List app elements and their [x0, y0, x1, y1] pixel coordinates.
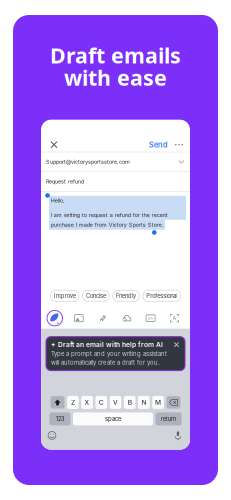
button[interactable]: Attach file	[95, 311, 110, 326]
staticText: Hey	[158, 339, 168, 346]
staticText: M	[155, 398, 161, 406]
staticText: Professional	[146, 292, 177, 299]
button[interactable]: V	[110, 396, 121, 409]
staticText: I am writing to request a refund for the…	[51, 212, 168, 218]
staticText: Hello,	[51, 197, 65, 204]
button[interactable]: Scan document	[167, 311, 182, 326]
staticText: Z	[71, 398, 75, 406]
staticText: space	[105, 415, 121, 422]
staticText: Concise	[86, 292, 106, 299]
button[interactable]: Improve	[50, 290, 79, 302]
button[interactable]: N	[138, 396, 150, 409]
button[interactable]: Emoji keyboard	[45, 429, 59, 441]
button[interactable]: Mail	[44, 336, 91, 348]
button[interactable]: Close	[47, 138, 61, 152]
button[interactable]: C	[95, 396, 107, 409]
staticText: GIF	[148, 316, 154, 320]
staticText: Type a prompt and your writing assistant	[51, 350, 167, 357]
staticText: will automatically create a draft for yo…	[51, 359, 160, 366]
button[interactable]: space	[73, 412, 153, 425]
staticText: with ease	[64, 63, 167, 92]
button[interactable]: Insert from Drive	[119, 311, 134, 326]
button[interactable]: Hey	[140, 336, 187, 348]
staticText: Support@victorysportsstore.com	[46, 159, 130, 165]
staticText: Mail	[63, 339, 73, 346]
button[interactable]: Shift	[50, 396, 64, 409]
staticText: Send	[149, 140, 168, 149]
button[interactable]: Insert photo	[71, 311, 86, 326]
button[interactable]: Send	[149, 138, 168, 152]
button[interactable]: X	[81, 396, 93, 409]
staticText: Improve	[54, 292, 76, 299]
staticText: 123	[56, 415, 64, 422]
staticText: Request refund	[46, 178, 84, 185]
button[interactable]: Z	[67, 396, 79, 409]
button[interactable]: More options	[173, 138, 185, 152]
button[interactable]: Writing tools	[47, 310, 62, 326]
staticText: Draft an email with help from AI	[58, 341, 163, 349]
staticText: purchase I made from Victory Sports Stor…	[51, 221, 164, 228]
staticText: C	[99, 398, 104, 406]
button[interactable]: Delete	[166, 396, 180, 409]
button[interactable]: 123	[49, 412, 70, 425]
staticText: X	[85, 398, 90, 406]
button[interactable]: M	[152, 396, 164, 409]
button[interactable]: Concise	[82, 290, 109, 302]
button[interactable]: Dismiss	[173, 341, 180, 348]
button[interactable]: return	[156, 412, 182, 425]
staticText: V	[113, 398, 118, 406]
staticText: N	[141, 398, 146, 406]
button[interactable]: Insert GIF	[143, 311, 158, 326]
button[interactable]: Dictate	[171, 429, 185, 441]
staticText: A	[172, 315, 176, 321]
staticText: I	[114, 339, 116, 346]
staticText: B	[128, 398, 132, 406]
staticText: Friendly	[116, 292, 136, 299]
staticText: return	[161, 415, 176, 422]
button[interactable]: B	[124, 396, 135, 409]
staticText: Draft emails	[50, 41, 181, 69]
button[interactable]: Friendly	[113, 290, 139, 302]
button[interactable]: Professional	[143, 290, 181, 302]
button[interactable]: I	[92, 336, 139, 348]
